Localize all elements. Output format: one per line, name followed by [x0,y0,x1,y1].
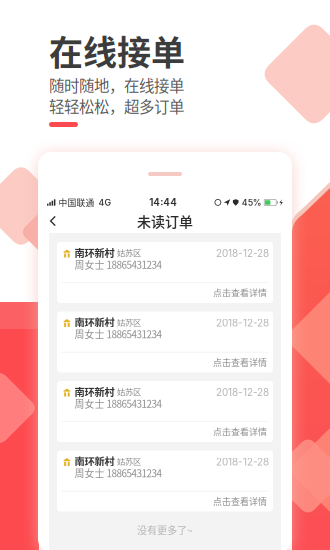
button[interactable]: 南环新村 [57,381,273,442]
staticText: 南环新村 [74,384,114,399]
staticText: 中国联通 [58,196,94,209]
staticText: 2018-12-28 [216,386,269,398]
staticText: 没有更多了~ [137,522,193,537]
staticText: 轻轻松松，超多订单 [49,95,184,117]
staticText: 点击查看详情 [213,494,267,507]
staticText: 45% [242,197,262,208]
staticText: 南环新村 [74,245,114,260]
staticText: 南环新村 [74,315,114,329]
button[interactable]: 南环新村 [57,311,273,372]
staticText: 周女士 18865431234 [74,327,161,341]
button[interactable]: 南环新村 [57,242,273,303]
staticText: 点击查看详情 [213,286,267,299]
staticText: 点击查看详情 [213,425,267,438]
staticText: 14:44 [149,196,177,208]
staticText: 2018-12-28 [216,317,269,329]
staticText: 周女士 18865431234 [74,396,161,411]
staticText: 未读订单 [137,211,193,231]
staticText: 姑苏区 [117,316,141,328]
staticText: 在线接单 [49,26,185,75]
staticText: 姑苏区 [117,455,141,467]
staticText: 姑苏区 [117,385,141,397]
staticText: 周女士 18865431234 [74,466,161,480]
button[interactable]: Back [45,210,61,232]
staticText: 南环新村 [74,454,114,468]
staticText: 周女士 18865431234 [74,257,161,272]
staticText: 4G [98,197,111,208]
staticText: 2018-12-28 [216,456,269,468]
staticText: 2018-12-28 [216,247,269,259]
staticText: 姑苏区 [117,246,141,258]
button[interactable]: 南环新村 [57,450,273,511]
staticText: 点击查看详情 [213,355,267,368]
staticText: 随时随地，在线接单 [49,74,184,96]
